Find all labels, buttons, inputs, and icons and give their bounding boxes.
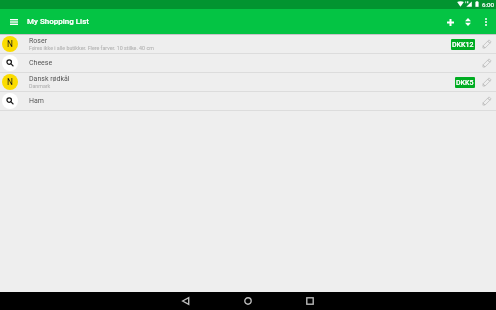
staticText: Ham xyxy=(29,97,44,105)
button[interactable]: N xyxy=(0,35,496,54)
button[interactable]: Back xyxy=(155,292,217,310)
staticText: Dansk rødkål xyxy=(29,75,70,83)
staticText: N xyxy=(7,77,13,87)
button[interactable]: Recent apps xyxy=(279,292,341,310)
button[interactable]: Edit xyxy=(480,38,492,50)
button[interactable]: Cheese xyxy=(0,54,496,73)
staticText: N xyxy=(7,39,13,49)
button[interactable]: Open navigation drawer xyxy=(2,10,26,34)
button[interactable]: Add item xyxy=(441,13,459,31)
staticText: 6:00 xyxy=(482,1,494,8)
staticText: Roser xyxy=(29,37,48,45)
staticText: My Shopping List xyxy=(27,17,89,26)
staticText: Danmark xyxy=(29,83,51,89)
button[interactable]: Edit xyxy=(480,95,492,107)
button[interactable]: More options xyxy=(477,13,495,31)
staticText: DKK5 xyxy=(456,79,474,87)
button[interactable]: Edit xyxy=(480,57,492,69)
button[interactable]: Sort xyxy=(459,13,477,31)
button[interactable]: N xyxy=(0,73,496,92)
staticText: Cheese xyxy=(29,59,53,67)
staticText: DKK12 xyxy=(452,41,474,49)
button[interactable]: Home xyxy=(217,292,279,310)
button[interactable]: Ham xyxy=(0,92,496,111)
staticText: Føres ikke i alle butikker. Flere farver… xyxy=(29,45,154,51)
button[interactable]: Edit xyxy=(480,76,492,88)
